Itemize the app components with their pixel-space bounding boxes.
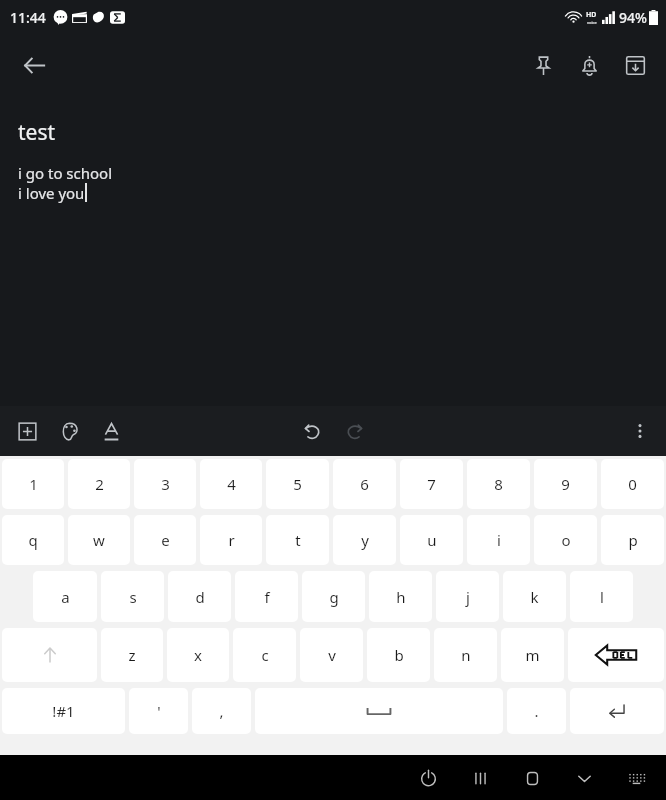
button[interactable]: k xyxy=(503,571,566,622)
button[interactable]: 9 xyxy=(534,459,597,509)
button[interactable]: t xyxy=(266,515,329,565)
staticText: , xyxy=(219,701,224,721)
staticText: test xyxy=(18,118,56,147)
button[interactable]: q xyxy=(2,515,64,565)
staticText: m xyxy=(525,645,540,665)
staticText: r xyxy=(228,530,235,550)
staticText: x xyxy=(194,645,202,665)
button[interactable]: Add attachment xyxy=(6,410,48,452)
staticText: 2 xyxy=(95,474,104,494)
staticText: y xyxy=(361,530,369,550)
button[interactable]: o xyxy=(534,515,597,565)
staticText: i go to school xyxy=(18,163,113,183)
button[interactable]: Shift xyxy=(2,628,97,682)
button[interactable]: , xyxy=(192,688,251,734)
staticText: 3 xyxy=(161,474,170,494)
staticText: v xyxy=(328,645,336,665)
staticText: 9 xyxy=(561,474,570,494)
button[interactable]: ' xyxy=(129,688,188,734)
staticText: w xyxy=(93,530,105,550)
staticText: o xyxy=(561,530,571,550)
button[interactable]: g xyxy=(302,571,365,622)
staticText: 94% xyxy=(619,8,647,27)
staticText: 1 xyxy=(29,474,38,494)
staticText: !#1 xyxy=(52,701,75,721)
button[interactable]: b xyxy=(367,628,430,682)
button[interactable]: Power xyxy=(408,758,448,798)
staticText: p xyxy=(628,530,638,550)
button[interactable]: 2 xyxy=(68,459,130,509)
button[interactable]: 0 xyxy=(601,459,664,509)
button[interactable]: v xyxy=(300,628,363,682)
button[interactable]: y xyxy=(333,515,396,565)
button[interactable]: 8 xyxy=(467,459,530,509)
button[interactable]: n xyxy=(434,628,497,682)
staticText: a xyxy=(61,587,70,607)
button[interactable]: l xyxy=(570,571,633,622)
button[interactable]: Enter xyxy=(570,688,664,734)
button[interactable]: Text format xyxy=(90,410,132,452)
staticText: g xyxy=(329,587,339,607)
button[interactable]: Undo xyxy=(291,410,333,452)
staticText: i love you xyxy=(18,183,85,203)
button[interactable]: x xyxy=(167,628,229,682)
staticText: u xyxy=(427,530,437,550)
staticText: 6 xyxy=(360,474,369,494)
staticText: n xyxy=(461,645,471,665)
staticText: 4 xyxy=(227,474,236,494)
button[interactable]: Archive xyxy=(612,42,658,88)
button[interactable]: m xyxy=(501,628,564,682)
staticText: k xyxy=(530,587,539,607)
button[interactable]: r xyxy=(200,515,262,565)
button[interactable]: . xyxy=(507,688,566,734)
staticText: h xyxy=(396,587,406,607)
button[interactable]: c xyxy=(233,628,296,682)
button[interactable]: f xyxy=(235,571,298,622)
staticText: 8 xyxy=(494,474,503,494)
button[interactable]: i xyxy=(467,515,530,565)
button[interactable]: j xyxy=(436,571,499,622)
button[interactable]: Hide keyboard xyxy=(564,758,604,798)
button[interactable]: !#1 xyxy=(2,688,125,734)
button[interactable]: 5 xyxy=(266,459,329,509)
button[interactable]: Space xyxy=(255,688,503,734)
button[interactable]: Recents xyxy=(460,758,500,798)
button[interactable]: u xyxy=(400,515,463,565)
button[interactable]: h xyxy=(369,571,432,622)
staticText: l xyxy=(600,587,604,607)
button[interactable]: 1 xyxy=(2,459,64,509)
button[interactable]: Switch keyboard xyxy=(616,758,656,798)
staticText: i xyxy=(497,530,501,550)
button[interactable]: w xyxy=(68,515,130,565)
button[interactable]: Delete xyxy=(568,628,664,682)
staticText: 0 xyxy=(628,474,637,494)
button[interactable]: Reminder xyxy=(566,42,612,88)
button[interactable]: e xyxy=(134,515,196,565)
button[interactable]: d xyxy=(168,571,231,622)
button[interactable]: Redo xyxy=(333,410,375,452)
button[interactable]: More options xyxy=(620,411,660,451)
staticText: c xyxy=(261,645,269,665)
staticText: t xyxy=(295,530,301,550)
button[interactable]: Background colour xyxy=(48,410,90,452)
button[interactable]: Back xyxy=(10,41,58,89)
staticText: 7 xyxy=(427,474,436,494)
staticText: j xyxy=(466,587,470,607)
button[interactable]: 6 xyxy=(333,459,396,509)
button[interactable]: p xyxy=(601,515,664,565)
staticText: q xyxy=(28,530,38,550)
button[interactable]: s xyxy=(101,571,164,622)
staticText: ' xyxy=(157,701,161,721)
button[interactable]: a xyxy=(33,571,97,622)
button[interactable]: 4 xyxy=(200,459,262,509)
button[interactable]: z xyxy=(101,628,163,682)
button[interactable]: 3 xyxy=(134,459,196,509)
staticText: . xyxy=(534,701,539,721)
button[interactable]: Pin xyxy=(520,42,566,88)
staticText: d xyxy=(195,587,205,607)
staticText: b xyxy=(394,645,404,665)
staticText: z xyxy=(128,645,136,665)
button[interactable]: test xyxy=(18,118,648,406)
button[interactable]: 7 xyxy=(400,459,463,509)
button[interactable]: Home xyxy=(512,758,552,798)
